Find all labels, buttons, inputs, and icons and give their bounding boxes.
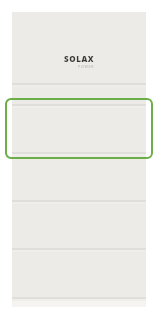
- staticText: POWER: [78, 64, 95, 69]
- button[interactable]: Selected item: [5, 98, 153, 159]
- button[interactable]: [12, 84, 146, 104]
- button[interactable]: [12, 12, 146, 83]
- staticText: SOLAX: [64, 53, 95, 64]
- button[interactable]: [12, 153, 146, 200]
